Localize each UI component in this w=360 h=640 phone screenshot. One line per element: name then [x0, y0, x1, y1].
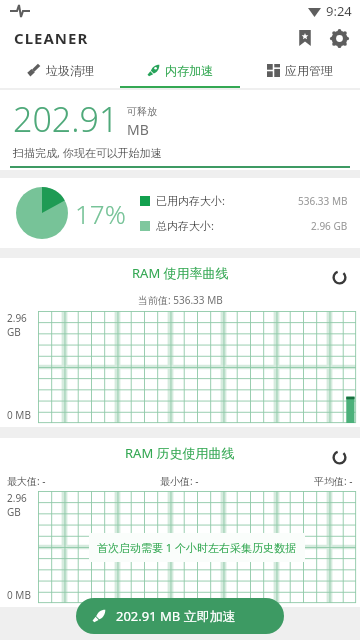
staticText: RAM 历史使用曲线: [125, 444, 235, 462]
staticText: CLEANER: [14, 28, 89, 48]
staticText: 536.33 MB: [298, 194, 348, 208]
staticText: 2.96: [7, 491, 27, 505]
staticText: 总内存大小:: [156, 218, 214, 233]
staticText: 内存加速: [165, 63, 213, 78]
staticText: 已用内存大小:: [156, 193, 225, 208]
staticText: 当前值: 536.33 MB: [138, 293, 223, 307]
staticText: 9:24: [326, 2, 352, 20]
staticText: 可释放: [127, 105, 157, 118]
staticText: 最小值: -: [160, 474, 199, 488]
staticText: RAM 使用率曲线: [132, 264, 229, 282]
button[interactable]: 垃圾清理: [0, 54, 120, 86]
staticText: 平均值: -: [314, 474, 353, 488]
staticText: 2.96 GB: [311, 219, 348, 233]
staticText: GB: [7, 325, 21, 339]
button[interactable]: Refresh: [326, 264, 352, 290]
staticText: 垃圾清理: [46, 63, 94, 78]
staticText: 最大值: -: [7, 474, 46, 488]
staticText: 应用管理: [285, 63, 333, 78]
staticText: 17%: [75, 196, 126, 231]
staticText: MB: [127, 120, 149, 139]
staticText: GB: [7, 505, 21, 519]
staticText: 首次启动需要 1 个小时左右采集历史数据: [97, 540, 297, 555]
button[interactable]: 应用管理: [240, 54, 360, 86]
staticText: 0 MB: [7, 408, 31, 422]
button[interactable]: Refresh: [326, 444, 352, 470]
button[interactable]: 内存加速: [120, 54, 240, 86]
button[interactable]: 202.91 MB 立即加速: [76, 598, 284, 634]
button[interactable]: Settings: [322, 22, 356, 54]
staticText: 202.91 MB 立即加速: [116, 607, 236, 625]
staticText: 0 MB: [7, 588, 31, 602]
staticText: 2.96: [7, 311, 27, 325]
staticText: 202.91: [13, 96, 119, 142]
staticText: 扫描完成, 你现在可以开始加速: [13, 145, 162, 160]
button[interactable]: Bookmark: [288, 22, 322, 54]
